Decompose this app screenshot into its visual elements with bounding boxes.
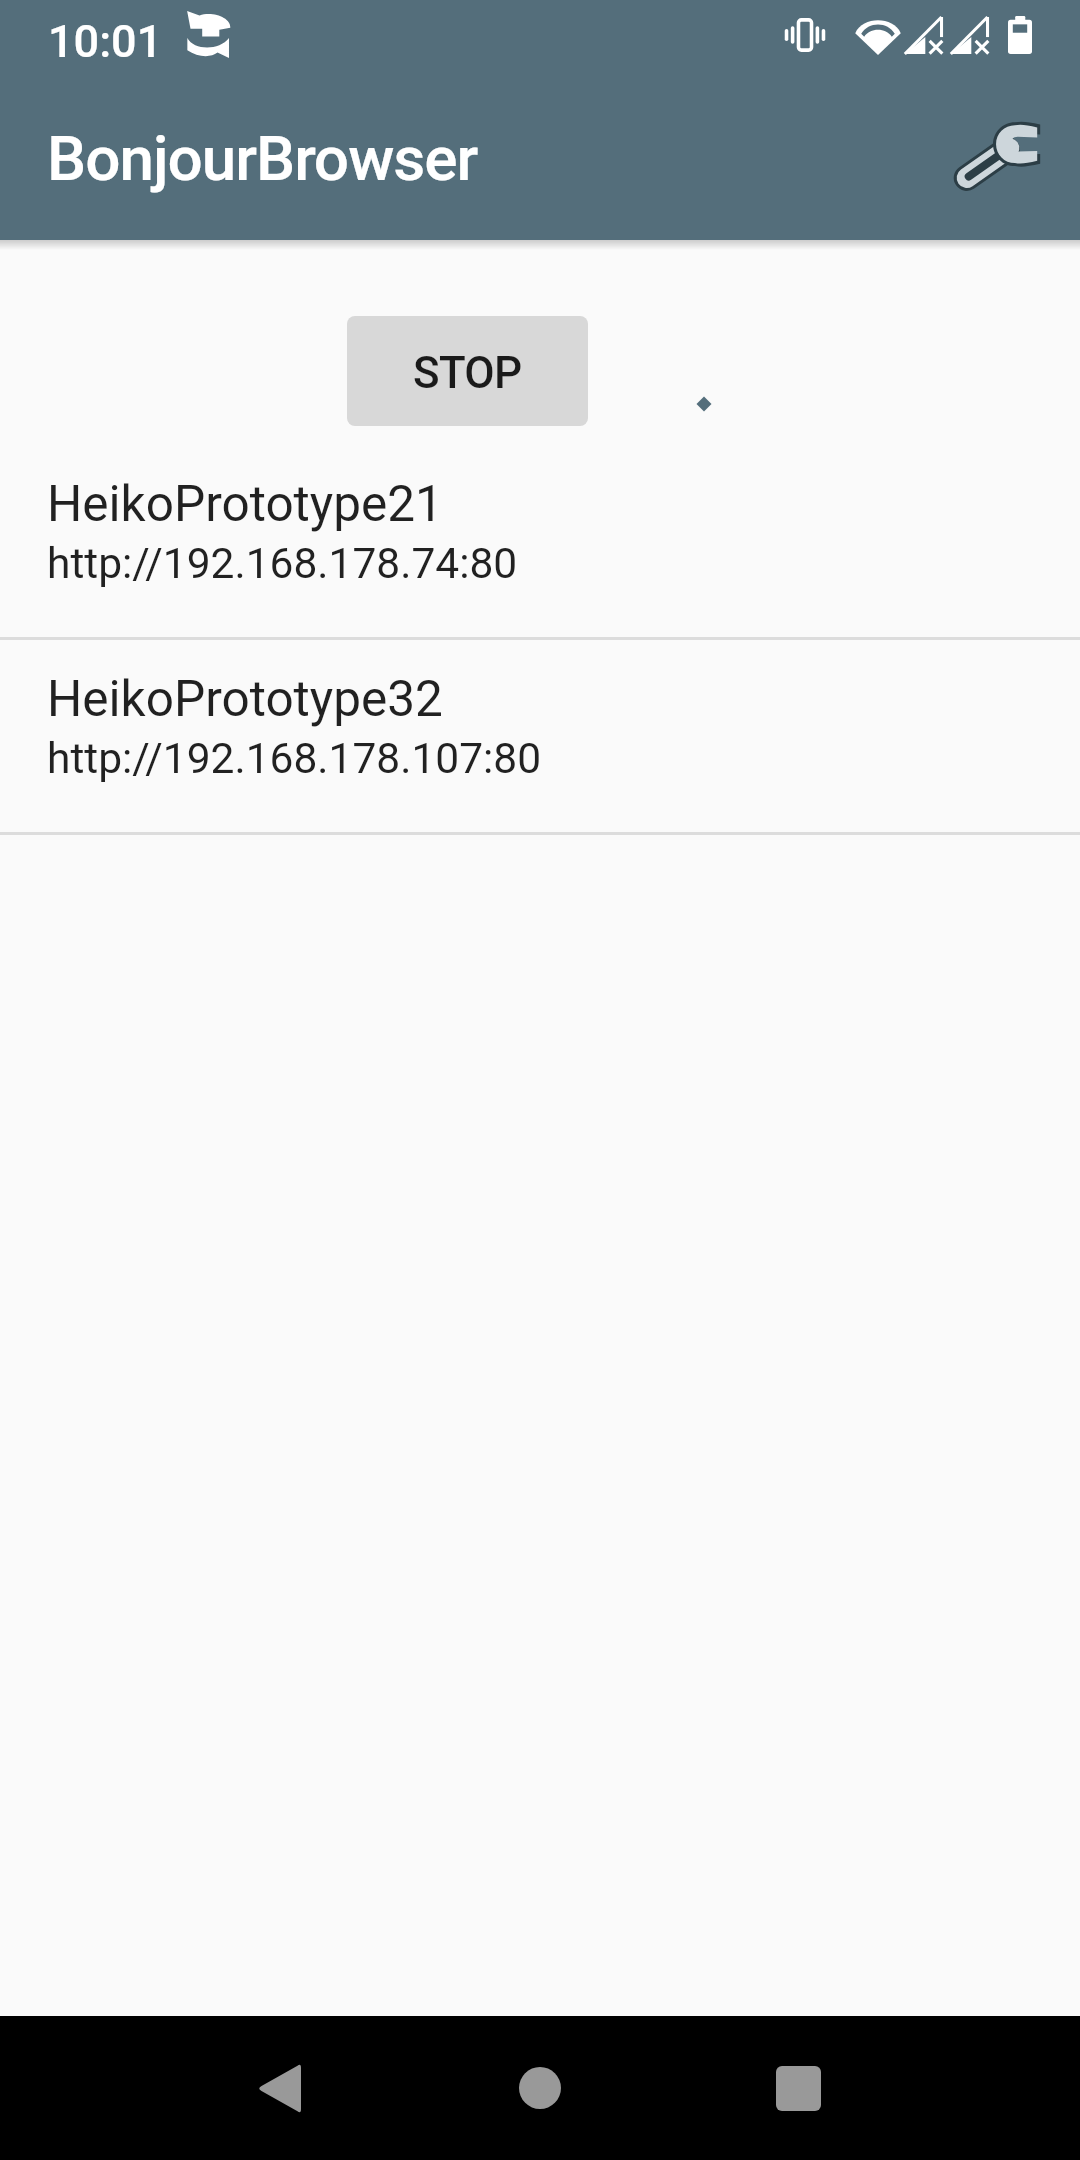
button[interactable]: Settings xyxy=(937,96,1057,216)
staticText: http://192.168.178.107:80 xyxy=(47,734,542,784)
staticText: 10:01 xyxy=(48,15,163,68)
button[interactable]: Back xyxy=(219,2040,339,2136)
button[interactable]: Recent apps xyxy=(738,2040,858,2136)
button[interactable]: STOP xyxy=(347,316,588,426)
button[interactable]: HeikoPrototype21 xyxy=(0,445,1080,637)
staticText: http://192.168.178.74:80 xyxy=(47,539,518,589)
staticText: HeikoPrototype32 xyxy=(47,670,443,728)
staticText: HeikoPrototype21 xyxy=(47,475,443,533)
staticText: STOP xyxy=(413,347,522,399)
staticText: BonjourBrowser xyxy=(47,122,478,195)
button[interactable]: HeikoPrototype32 xyxy=(0,640,1080,832)
button[interactable]: Home xyxy=(480,2040,600,2136)
